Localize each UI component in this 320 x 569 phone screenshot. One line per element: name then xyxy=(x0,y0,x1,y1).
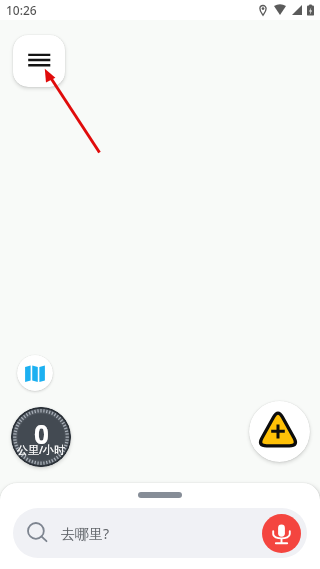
staticText: 0 xyxy=(34,416,49,451)
staticText: 公里/小时 xyxy=(17,442,66,457)
button[interactable]: Menu xyxy=(13,35,65,87)
button[interactable]: Speedometer xyxy=(11,407,71,467)
button[interactable]: Voice search xyxy=(262,514,301,553)
button[interactable]: Report xyxy=(249,401,310,462)
button[interactable]: Map layers xyxy=(17,355,53,391)
staticText: 去哪里? xyxy=(61,524,110,543)
button[interactable]: 去哪里? xyxy=(13,508,307,558)
staticText: 10:26 xyxy=(6,2,37,18)
